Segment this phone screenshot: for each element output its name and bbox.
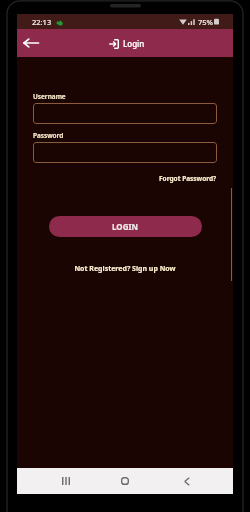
- button[interactable]: LOGIN: [49, 216, 202, 237]
- button[interactable]: Recent apps: [54, 469, 78, 493]
- staticText: Password: [33, 131, 64, 140]
- button[interactable]: [33, 103, 217, 124]
- button[interactable]: Back: [175, 469, 199, 493]
- staticText: 22:13: [32, 17, 52, 27]
- staticText: Login: [123, 38, 145, 49]
- staticText: LOGIN: [112, 221, 139, 232]
- button[interactable]: Not Registered? Sign up Now: [74, 264, 176, 274]
- button[interactable]: Back: [20, 32, 42, 54]
- button[interactable]: Forgot Password?: [159, 174, 217, 183]
- button[interactable]: [33, 142, 217, 163]
- button[interactable]: Home: [113, 469, 137, 493]
- staticText: Username: [33, 92, 66, 101]
- staticText: 75%: [198, 17, 213, 27]
